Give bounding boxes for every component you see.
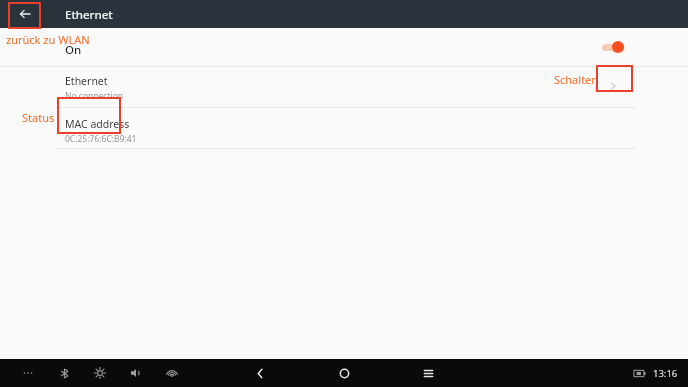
- staticText: zurück zu WLAN: [6, 32, 90, 47]
- button[interactable]: Back: [9, 0, 40, 28]
- button[interactable]: Brightness: [86, 359, 114, 387]
- button[interactable]: Home: [322, 359, 366, 387]
- staticText: No connection: [65, 90, 124, 102]
- staticText: MAC address: [65, 117, 130, 131]
- button[interactable]: Wi-Fi: [158, 359, 186, 387]
- button[interactable]: Bluetooth: [50, 359, 78, 387]
- staticText: Schalter: [554, 72, 596, 87]
- button[interactable]: More: [14, 359, 42, 387]
- button[interactable]: Ethernet: [0, 67, 688, 107]
- staticText: Status: [22, 110, 55, 125]
- button[interactable]: Volume: [122, 359, 150, 387]
- button[interactable]: Recent apps: [406, 359, 450, 387]
- button[interactable]: Back: [238, 359, 282, 387]
- staticText: Ethernet: [65, 7, 113, 23]
- staticText: 13:16: [653, 367, 678, 380]
- button[interactable]: MAC address: [0, 108, 688, 148]
- button[interactable]: On: [0, 28, 688, 66]
- staticText: 0C:25:76:6C:B9:41: [65, 133, 137, 145]
- staticText: Ethernet: [65, 74, 108, 88]
- staticText: On: [65, 42, 82, 58]
